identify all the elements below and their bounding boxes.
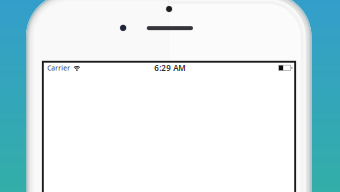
staticText: Carrier [47,64,70,72]
staticText: 6:29 AM [154,63,185,73]
